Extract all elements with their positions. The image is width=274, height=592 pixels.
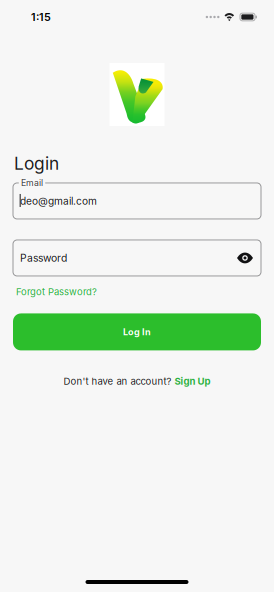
staticText: Email	[21, 178, 43, 188]
staticText: Sign Up	[174, 375, 210, 387]
button[interactable]: Forgot Password?	[16, 286, 97, 297]
staticText: 1:15	[31, 10, 51, 24]
button[interactable]: Sign Up	[174, 375, 210, 387]
staticText: Don't have an account?	[63, 375, 171, 387]
button[interactable]: Show password	[237, 253, 253, 263]
staticText: Password	[20, 252, 67, 264]
staticText: deo@gmail.com	[20, 195, 97, 207]
staticText: Forgot Password?	[16, 286, 97, 297]
staticText: Login	[14, 153, 59, 174]
button[interactable]: Log In	[13, 313, 261, 350]
staticText: Log In	[123, 326, 151, 337]
